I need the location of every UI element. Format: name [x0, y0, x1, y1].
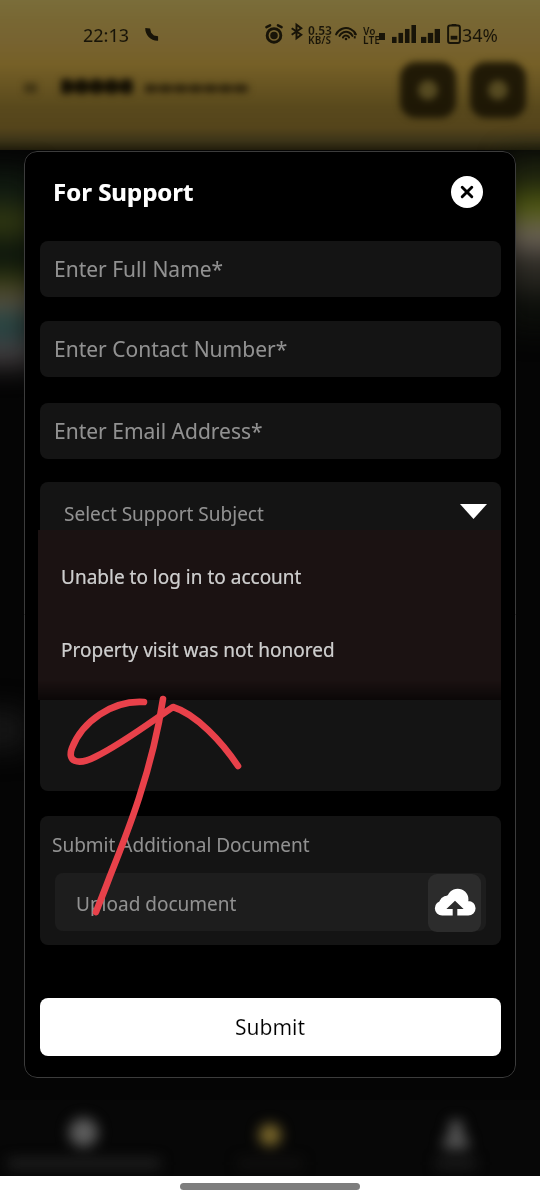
staticText: 0.53	[308, 22, 332, 38]
staticText: Unable to log in to account	[61, 564, 302, 590]
button[interactable]: Submit	[40, 998, 501, 1056]
button[interactable]: Enter Contact Number*	[40, 321, 501, 377]
staticText: Property visit was not honored	[61, 637, 335, 663]
staticText: Submit Additional Document	[52, 832, 310, 858]
staticText: Enter Email Address*	[54, 417, 263, 446]
staticText: KB/S	[308, 33, 331, 47]
staticText: Enter Contact Number*	[54, 335, 288, 364]
staticText: Upload document	[76, 891, 237, 917]
button[interactable]	[55, 873, 486, 931]
button[interactable]: Enter Email Address*	[40, 403, 501, 459]
staticText: For Support	[53, 175, 194, 208]
staticText: Enter Full Name*	[54, 255, 224, 284]
staticText: Vo	[363, 24, 376, 38]
staticText: LTE	[363, 33, 380, 47]
staticText: 34%	[462, 23, 498, 48]
staticText: Submit	[235, 1013, 306, 1042]
button[interactable]: Upload document	[428, 874, 481, 932]
staticText: Select Support Subject	[64, 501, 264, 527]
button[interactable]: Close	[451, 176, 483, 208]
button[interactable]: Enter Full Name*	[40, 241, 501, 297]
button[interactable]	[40, 482, 501, 564]
staticText: 22:13	[83, 23, 130, 48]
